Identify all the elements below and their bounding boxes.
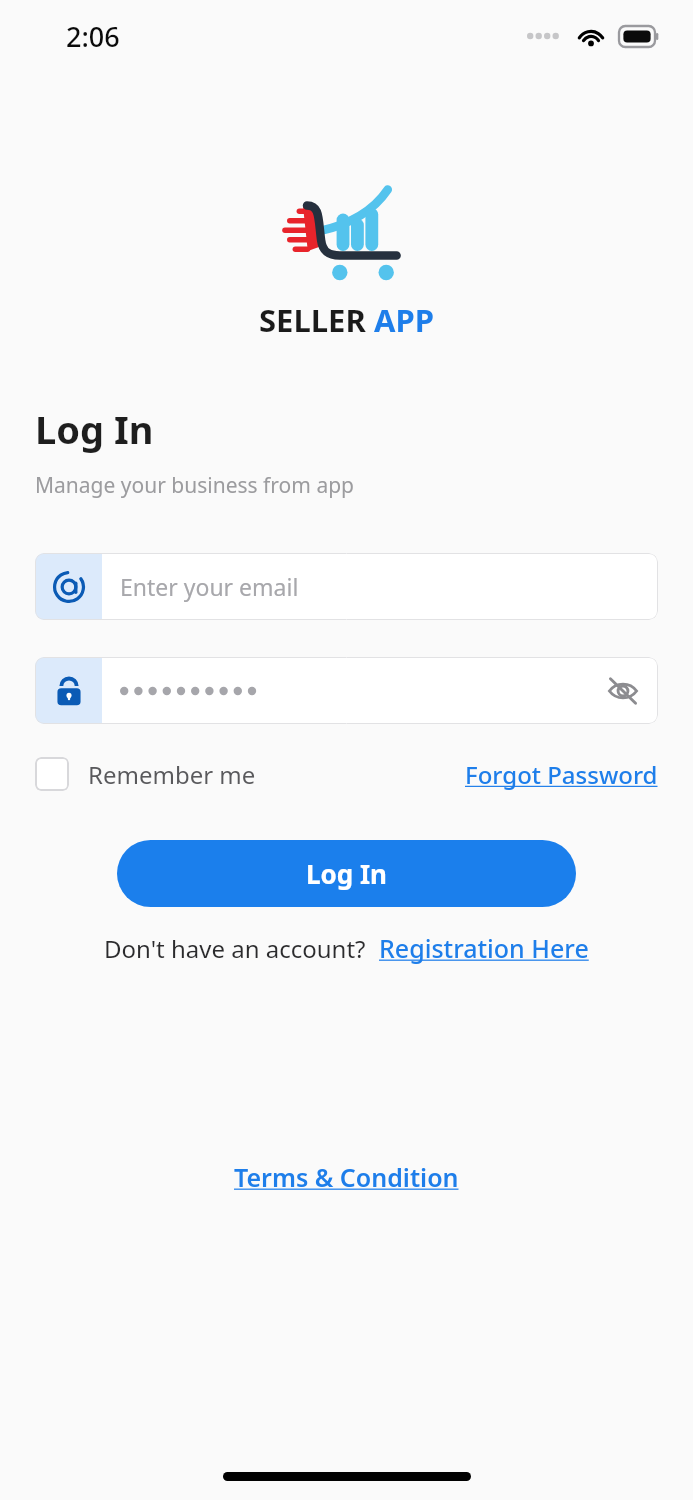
staticText: Forgot Password — [465, 758, 658, 791]
button[interactable]: Log In — [117, 840, 576, 907]
button[interactable]: Show password — [606, 657, 640, 724]
button[interactable]: Enter your email — [35, 553, 658, 620]
staticText: APP — [374, 299, 434, 341]
button[interactable]: Registration Here — [379, 931, 589, 965]
staticText: Manage your business from app — [35, 471, 354, 500]
button[interactable]: Terms & Condition — [230, 1158, 463, 1196]
staticText: Enter your email — [120, 571, 299, 602]
staticText: Log In — [35, 403, 154, 455]
staticText: Registration Here — [379, 931, 589, 965]
button[interactable]: Forgot Password — [465, 758, 658, 791]
button[interactable]: Remember me — [35, 757, 256, 791]
staticText: Don't have an account? — [104, 932, 366, 965]
staticText: Remember me — [88, 758, 256, 791]
staticText: 2:06 — [66, 18, 120, 55]
staticText: Log In — [306, 856, 387, 891]
staticText: SELLER — [259, 299, 374, 341]
staticText: Terms & Condition — [234, 1160, 459, 1194]
button[interactable]: Show password — [35, 657, 658, 724]
